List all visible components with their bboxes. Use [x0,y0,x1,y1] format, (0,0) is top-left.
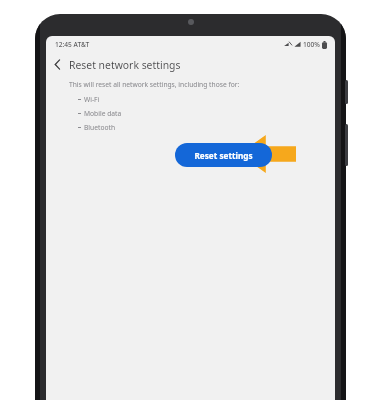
button[interactable]: Back [46,53,69,76]
staticText: Wi-Fi [84,95,100,104]
staticText: 12:45 AT&T [55,40,90,49]
staticText: Mobile data [84,109,122,118]
staticText: 100% [303,40,320,49]
staticText: This will reset all network settings, in… [69,80,240,89]
staticText: Reset network settings [69,58,181,72]
button[interactable]: Reset settings [175,143,272,167]
staticText: Reset settings [194,150,253,161]
staticText: Bluetooth [84,123,116,132]
other: Pointer [239,135,296,173]
